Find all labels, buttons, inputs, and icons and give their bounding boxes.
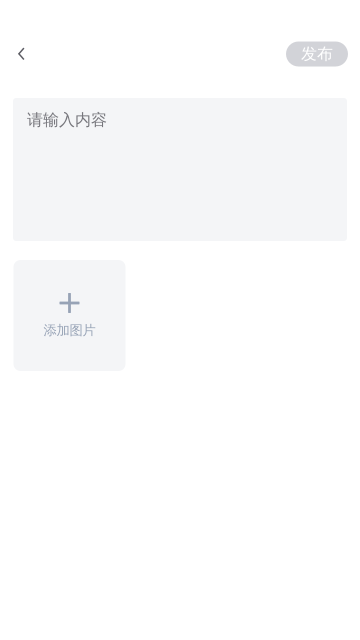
staticText: 请输入内容 — [27, 110, 107, 130]
button[interactable]: 添加图片 — [13, 260, 125, 371]
staticText: 发布 — [301, 44, 333, 64]
button[interactable]: Back — [0, 36, 36, 72]
button[interactable]: 发布 — [286, 41, 348, 66]
button[interactable]: 请输入内容 — [13, 98, 347, 241]
staticText: 添加图片 — [43, 322, 95, 338]
